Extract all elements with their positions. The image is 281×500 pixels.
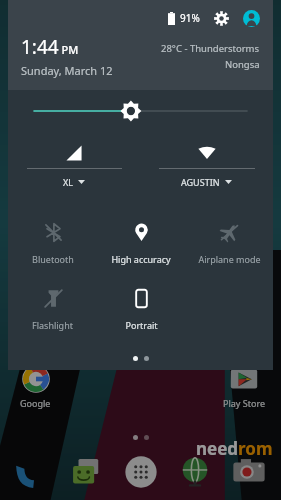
staticText: Google	[20, 397, 51, 409]
staticText: XL	[63, 176, 73, 188]
button[interactable]: All apps	[119, 450, 163, 494]
button[interactable]: Settings	[211, 8, 231, 28]
button[interactable]: Bluetooth	[8, 212, 97, 278]
staticText: Nongsa	[225, 58, 260, 71]
staticText: 28°C - Thunderstorms	[161, 42, 260, 55]
button[interactable]: Google	[18, 362, 53, 411]
button[interactable]: High accuracy	[97, 212, 185, 278]
staticText: Bluetooth	[32, 253, 74, 265]
staticText: Airplane mode	[198, 253, 261, 265]
staticText: AGUSTIN	[181, 176, 220, 188]
button[interactable]: Phone	[10, 450, 54, 494]
staticText: needrom	[196, 437, 273, 460]
staticText: Portrait	[125, 319, 158, 331]
button[interactable]: Play Store	[221, 362, 267, 411]
button[interactable]: AGUSTIN	[140, 140, 273, 202]
staticText: Flashlight	[32, 319, 73, 331]
button[interactable]: User	[241, 8, 261, 28]
staticText: 1:44 PM	[21, 34, 79, 60]
staticText: Sunday, March 12	[21, 63, 113, 78]
staticText: 91%	[180, 11, 200, 25]
button[interactable]: Portrait	[97, 278, 185, 344]
button[interactable]: Browser	[173, 450, 217, 494]
button[interactable]: XL	[8, 140, 140, 202]
button[interactable]: Flashlight	[8, 278, 97, 344]
staticText: High accuracy	[111, 253, 171, 265]
button[interactable]: Messaging	[64, 450, 108, 494]
button[interactable]: Camera	[227, 450, 271, 494]
staticText: Play Store	[223, 397, 265, 409]
button[interactable]: Brightness	[8, 90, 273, 132]
button[interactable]: Airplane mode	[185, 212, 273, 278]
